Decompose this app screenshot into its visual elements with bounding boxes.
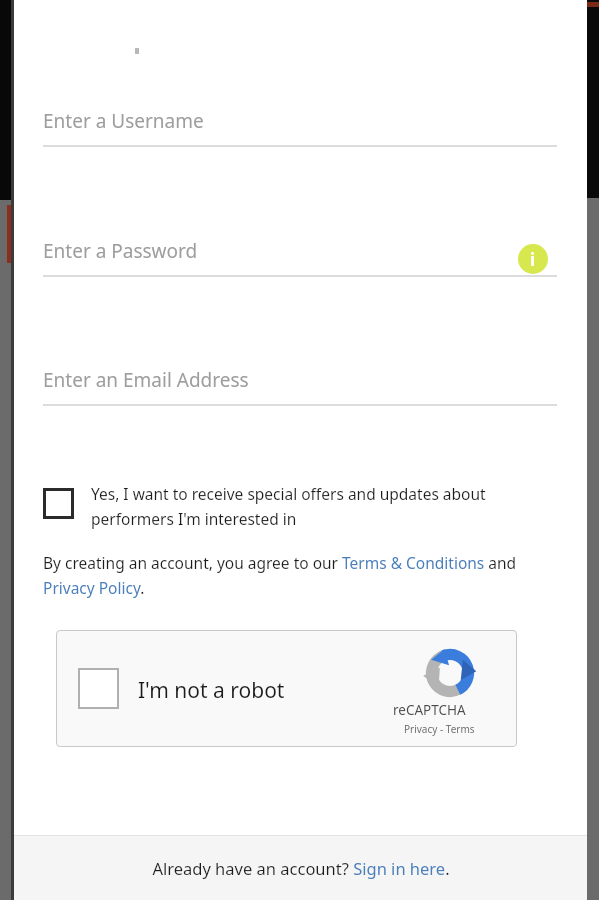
button[interactable]: Enter an Email Address	[43, 367, 557, 409]
button[interactable]: Enter a Password	[43, 238, 557, 280]
staticText: Privacy - Terms	[404, 722, 475, 736]
staticText: i	[530, 248, 536, 271]
button[interactable]: I'm not a robot	[56, 630, 517, 747]
button[interactable]: Already have an account? Sign in here.	[14, 835, 587, 900]
button[interactable]: Password information	[518, 244, 548, 274]
button[interactable]: Enter a Username	[43, 108, 557, 150]
staticText: reCAPTCHA	[393, 701, 466, 719]
staticText: By creating an account, you agree to our…	[43, 552, 543, 598]
button[interactable]: Yes, I want to receive special offers an…	[43, 483, 533, 529]
button[interactable]: By creating an account, you agree to our…	[43, 552, 543, 598]
staticText: Enter an Email Address	[43, 367, 249, 393]
staticText: Yes, I want to receive special offers an…	[91, 483, 533, 529]
staticText: Enter a Username	[43, 108, 204, 134]
staticText: Enter a Password	[43, 238, 198, 264]
staticText: I'm not a robot	[138, 676, 285, 705]
staticText: Already have an account? Sign in here.	[152, 857, 450, 879]
